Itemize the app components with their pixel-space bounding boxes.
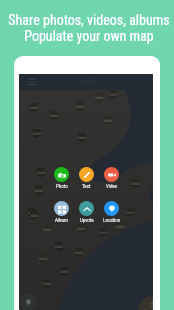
button[interactable]: Album: [49, 201, 74, 223]
staticText: Location: [103, 217, 121, 223]
button[interactable]: Photo: [49, 167, 74, 189]
button[interactable]: Upvote: [74, 201, 99, 223]
staticText: Share photos, videos, albums: [8, 12, 170, 28]
staticText: Video: [106, 183, 118, 189]
staticText: Upvote: [80, 217, 94, 223]
staticText: Photo: [56, 183, 68, 189]
staticText: Album: [55, 217, 68, 223]
button[interactable]: Text: [74, 167, 99, 189]
button[interactable]: People nearby: [138, 296, 153, 310]
button[interactable]: Location: [99, 201, 124, 223]
staticText: Populate your own map: [24, 28, 154, 44]
button[interactable]: Menu: [28, 78, 36, 86]
staticText: Text: [82, 183, 91, 189]
button[interactable]: My location: [19, 293, 37, 310]
button[interactable]: Video: [99, 167, 124, 189]
